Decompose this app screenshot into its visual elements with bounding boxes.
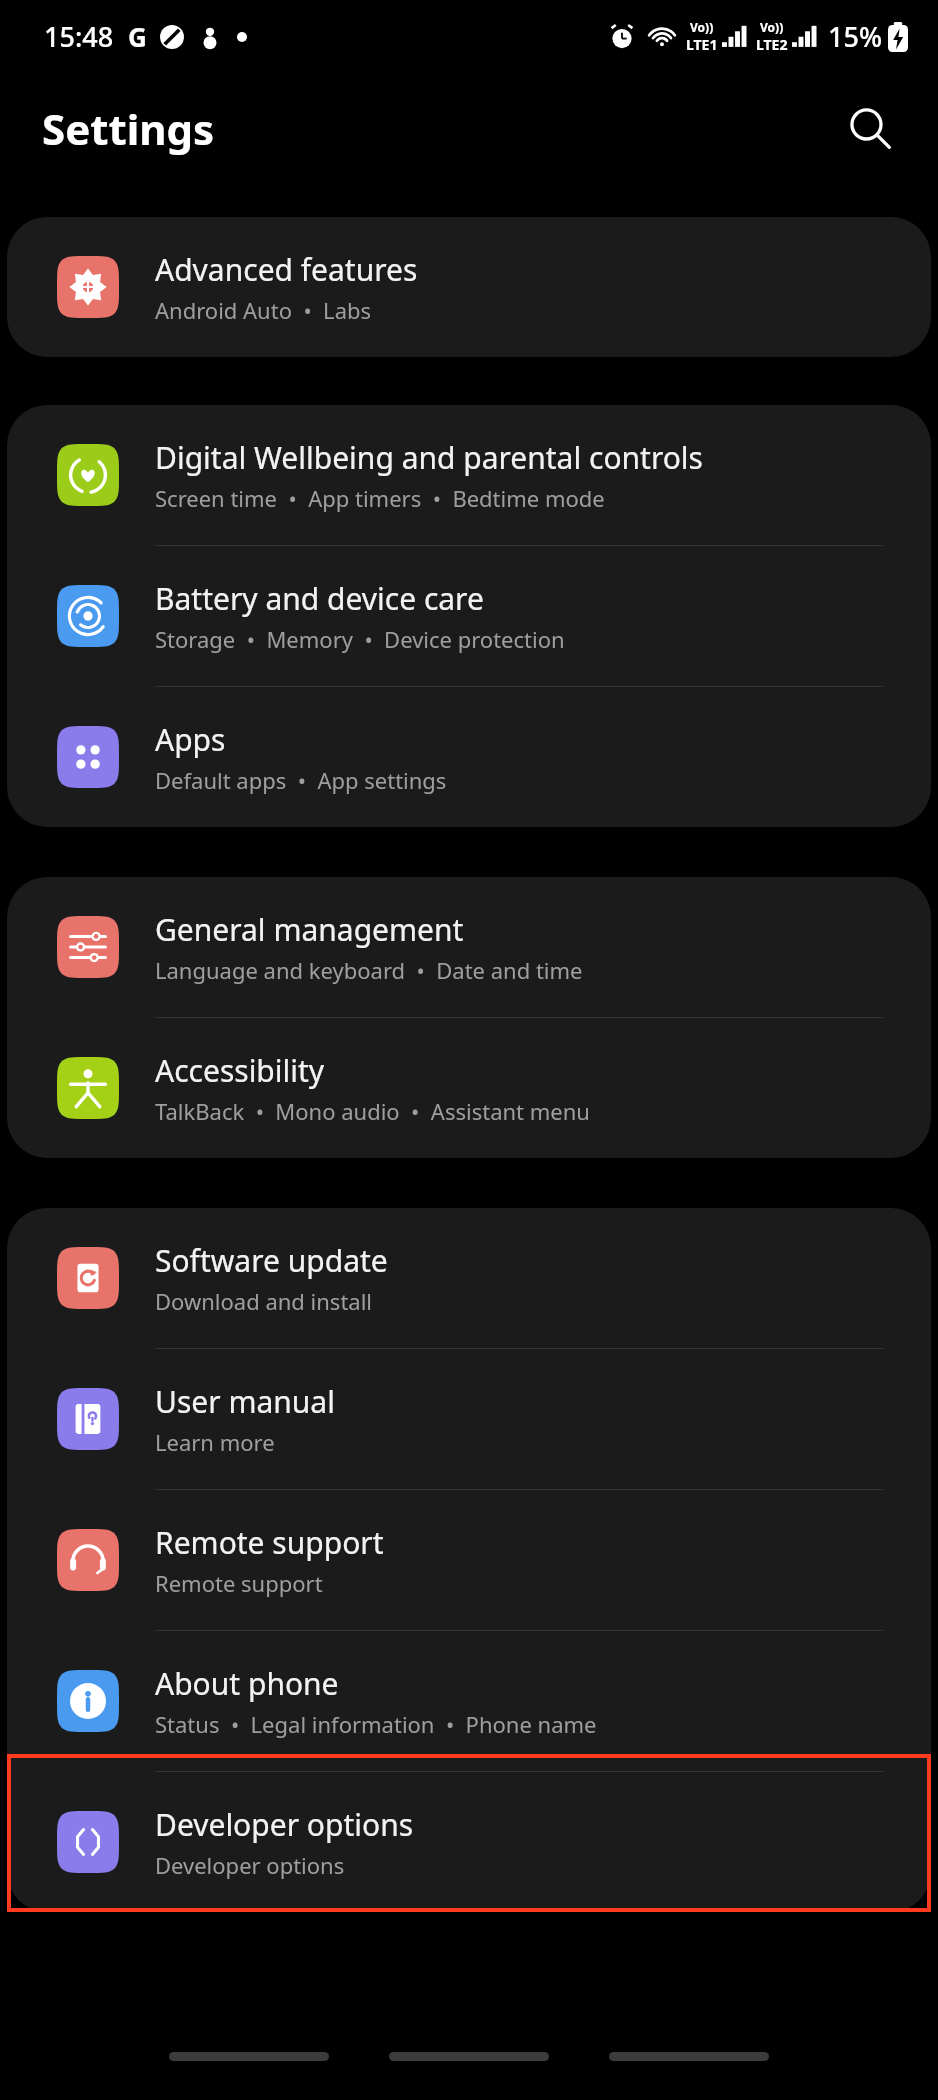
staticText: TalkBack • Mono audio • Assistant menu bbox=[155, 1096, 590, 1126]
staticText: Vo)) bbox=[760, 19, 784, 35]
staticText: Software update bbox=[155, 1240, 388, 1281]
staticText: Status • Legal information • Phone name bbox=[155, 1709, 597, 1739]
staticText: User manual bbox=[155, 1381, 335, 1422]
staticText: 15% bbox=[828, 18, 882, 55]
staticText: Accessibility bbox=[155, 1050, 325, 1091]
button[interactable]: About phone bbox=[7, 1631, 931, 1771]
button[interactable]: Search bbox=[832, 90, 908, 166]
button[interactable]: Remote support bbox=[7, 1490, 931, 1630]
staticText: Developer options bbox=[155, 1804, 414, 1845]
button[interactable]: User manual bbox=[7, 1349, 931, 1489]
staticText: Language and keyboard • Date and time bbox=[155, 955, 583, 985]
staticText: General management bbox=[155, 909, 464, 950]
staticText: Download and install bbox=[155, 1286, 373, 1316]
button[interactable]: Developer options bbox=[7, 1772, 931, 1912]
staticText: Digital Wellbeing and parental controls bbox=[155, 437, 703, 478]
button[interactable]: Battery and device care bbox=[7, 546, 931, 686]
staticText: Storage • Memory • Device protection bbox=[155, 624, 565, 654]
staticText: Battery and device care bbox=[155, 578, 484, 619]
staticText: Apps bbox=[155, 719, 226, 760]
staticText: G bbox=[128, 19, 147, 54]
staticText: Developer options bbox=[155, 1850, 345, 1880]
staticText: Learn more bbox=[155, 1427, 275, 1457]
staticText: Advanced features bbox=[155, 249, 418, 290]
button[interactable]: Home bbox=[389, 2052, 549, 2061]
button[interactable]: Apps bbox=[7, 687, 931, 827]
staticText: LTE2 bbox=[756, 35, 788, 54]
button[interactable]: Advanced features bbox=[7, 217, 931, 357]
button[interactable]: Digital Wellbeing and parental controls bbox=[7, 405, 931, 545]
button[interactable]: Recents bbox=[169, 2052, 329, 2061]
staticText: LTE1 bbox=[686, 35, 718, 54]
staticText: 15:48 bbox=[44, 18, 114, 55]
button[interactable]: General management bbox=[7, 877, 931, 1017]
staticText: Remote support bbox=[155, 1522, 384, 1563]
staticText: Settings bbox=[42, 100, 215, 157]
button[interactable]: Accessibility bbox=[7, 1018, 931, 1158]
staticText: Default apps • App settings bbox=[155, 765, 447, 795]
staticText: Vo)) bbox=[690, 19, 714, 35]
button[interactable]: Back bbox=[609, 2052, 769, 2061]
button[interactable]: Software update bbox=[7, 1208, 931, 1348]
staticText: About phone bbox=[155, 1663, 339, 1704]
staticText: Android Auto • Labs bbox=[155, 295, 372, 325]
staticText: Remote support bbox=[155, 1568, 323, 1598]
staticText: Screen time • App timers • Bedtime mode bbox=[155, 483, 605, 513]
